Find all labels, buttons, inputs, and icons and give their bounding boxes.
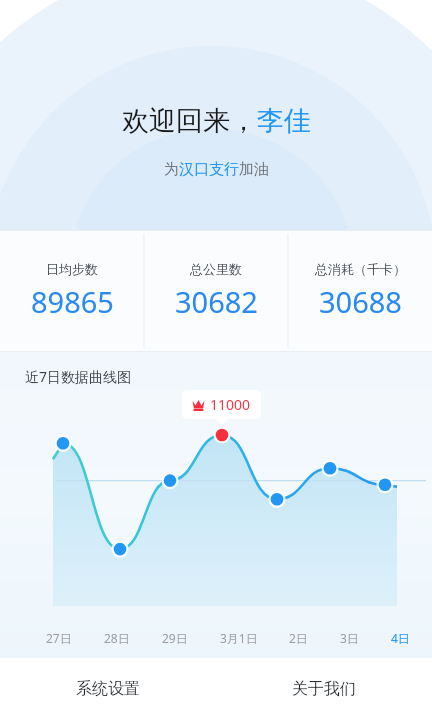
button[interactable]: 关于我们 (216, 658, 432, 720)
staticText: 27日 (46, 630, 72, 646)
staticText: 4日 (391, 630, 410, 646)
staticText: 30682 (175, 282, 258, 321)
button[interactable]: 3月1日 (218, 628, 260, 648)
button[interactable]: 系统设置 (0, 658, 216, 720)
staticText: 系统设置 (76, 679, 140, 699)
button[interactable]: 2日 (287, 628, 310, 648)
button[interactable]: 总消耗（千卡） (288, 230, 432, 352)
staticText: 3日 (340, 630, 359, 646)
staticText: 加油 (239, 160, 269, 179)
staticText: 为 (164, 160, 179, 179)
staticText: 欢迎回来， (122, 104, 257, 138)
staticText: 总消耗（千卡） (315, 261, 406, 277)
staticText: 28日 (104, 630, 130, 646)
button[interactable]: 4日 (389, 628, 412, 648)
button[interactable]: 应用图标 (13, 12, 57, 56)
staticText: 汉口支行 (179, 160, 239, 179)
staticText: 日均步数 (46, 261, 98, 277)
staticText: 总公里数 (190, 261, 242, 277)
staticText: 2日 (289, 630, 308, 646)
button[interactable]: 29日 (160, 628, 190, 648)
staticText: 11000 (210, 395, 251, 414)
staticText: 30688 (319, 282, 402, 321)
button[interactable]: 总公里数 (144, 230, 288, 352)
button[interactable]: 27日 (44, 628, 74, 648)
button[interactable]: 3日 (338, 628, 361, 648)
staticText: 29日 (162, 630, 188, 646)
staticText: 3月1日 (220, 630, 258, 646)
button[interactable]: 28日 (102, 628, 132, 648)
staticText: 近7日数据曲线图 (25, 367, 132, 386)
staticText: 关于我们 (292, 679, 356, 699)
staticText: 李佳 (257, 104, 311, 138)
staticText: 89865 (31, 282, 114, 321)
button[interactable]: 日均步数 (0, 230, 144, 352)
